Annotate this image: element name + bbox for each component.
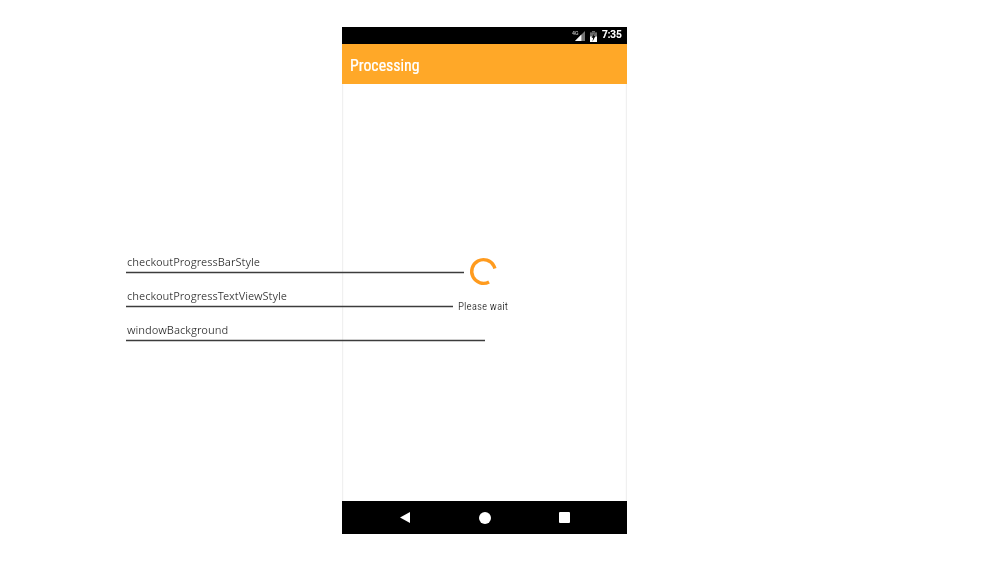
button[interactable]: Home [468, 501, 501, 534]
staticText: windowBackground [127, 322, 229, 337]
button[interactable]: Processing [342, 44, 627, 84]
button[interactable]: Back [388, 501, 421, 534]
staticText: 4G [572, 29, 579, 36]
staticText: 7:35 [602, 29, 622, 41]
staticText: Processing [350, 56, 420, 75]
staticText: checkoutProgressTextViewStyle [127, 288, 287, 303]
button[interactable]: Recents [548, 501, 581, 534]
staticText: checkoutProgressBarStyle [127, 254, 260, 269]
staticText: Please wait [458, 300, 508, 313]
